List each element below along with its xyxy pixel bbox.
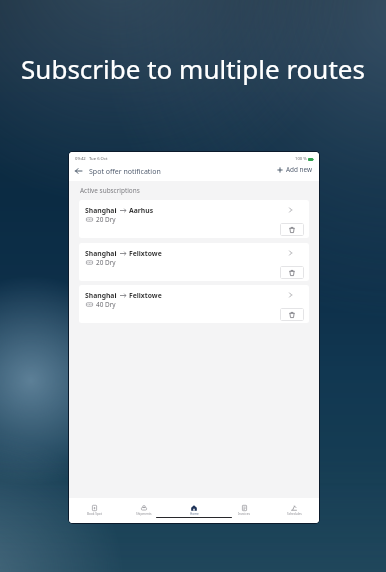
button[interactable]: Home xyxy=(169,498,219,522)
staticText: Felixtowe xyxy=(129,291,162,300)
staticText: Shanghai xyxy=(85,249,117,258)
button[interactable]: Delete subscription xyxy=(280,266,304,279)
staticText: 20 Dry xyxy=(96,215,116,224)
staticText: Shanghai xyxy=(85,291,117,300)
staticText: Aarhus xyxy=(129,206,154,215)
staticText: Active subscriptions xyxy=(80,186,140,195)
button[interactable]: Shanghai xyxy=(79,200,309,238)
button[interactable]: Back xyxy=(72,165,84,177)
staticText: Shanghai xyxy=(85,206,117,215)
staticText: 100 % xyxy=(295,156,307,162)
staticText: Shipments xyxy=(136,512,152,516)
button[interactable]: Book Spot xyxy=(69,498,119,522)
staticText: Add new xyxy=(286,165,313,174)
staticText: Home xyxy=(190,512,199,516)
staticText: 09:42 Tue 6 Oct xyxy=(75,156,108,162)
staticText: 20 Dry xyxy=(96,258,116,267)
staticText: Spot offer notification xyxy=(89,167,161,177)
button[interactable]: Shanghai xyxy=(79,243,309,281)
button[interactable]: Shipments xyxy=(119,498,169,522)
staticText: Schedules xyxy=(287,512,302,516)
button[interactable]: Delete subscription xyxy=(280,223,304,236)
button[interactable]: Schedules xyxy=(269,498,319,522)
staticText: Subscribe to multiple routes xyxy=(0,51,386,86)
staticText: Book Spot xyxy=(87,512,102,516)
button[interactable]: Invoices xyxy=(219,498,269,522)
staticText: Felixtowe xyxy=(129,249,162,258)
button[interactable]: Shanghai xyxy=(79,285,309,323)
button[interactable]: Delete subscription xyxy=(280,308,304,321)
staticText: 40 Dry xyxy=(96,300,116,309)
staticText: Invoices xyxy=(238,512,250,516)
button[interactable]: Add new xyxy=(277,165,313,174)
